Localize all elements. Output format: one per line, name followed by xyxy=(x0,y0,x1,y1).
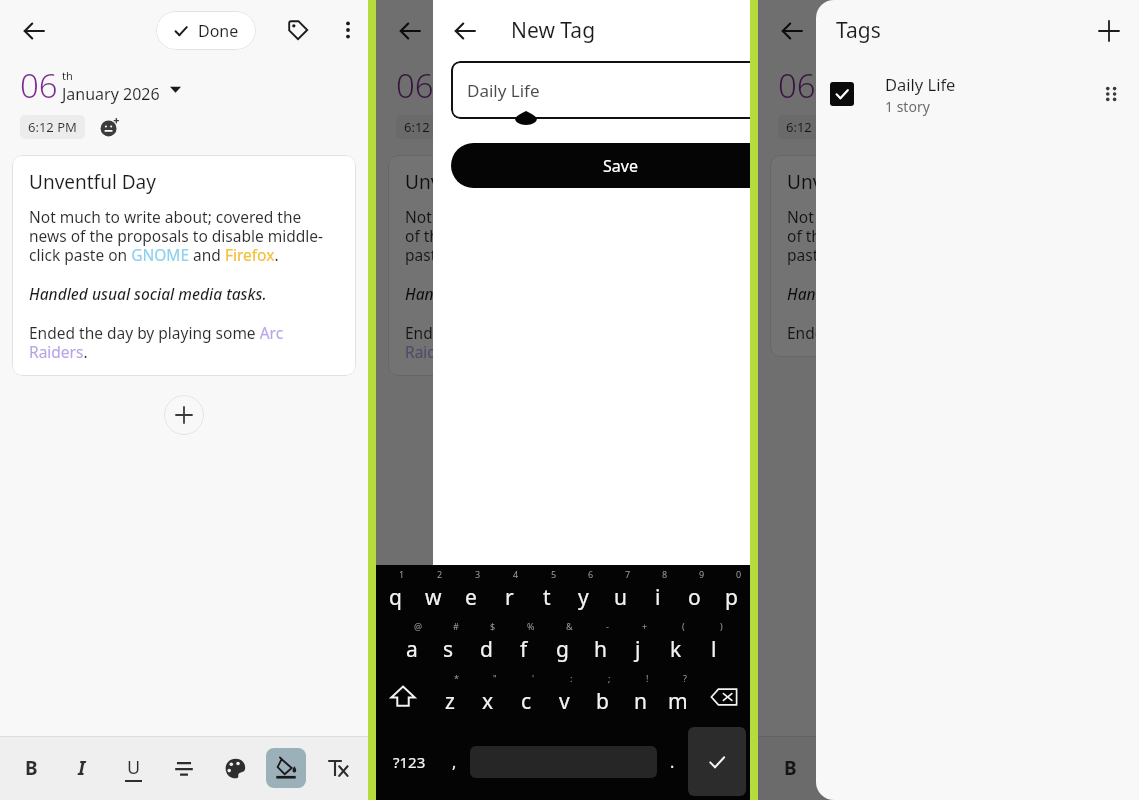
button[interactable]: Done xyxy=(532,11,632,50)
staticText: x xyxy=(482,687,494,716)
staticText: 3 xyxy=(475,568,481,580)
button[interactable]: Daily Life xyxy=(451,61,789,119)
button[interactable] xyxy=(260,736,311,800)
button[interactable]: 4 xyxy=(490,567,528,619)
button[interactable]: ! xyxy=(621,671,659,723)
button[interactable]: & xyxy=(543,619,581,671)
button[interactable]: 6:12 PM xyxy=(20,115,85,139)
button[interactable]: Back xyxy=(770,9,814,53)
button[interactable]: Reorder xyxy=(1091,74,1131,114)
button[interactable]: - xyxy=(581,619,619,671)
button[interactable]: * xyxy=(430,671,469,723)
button[interactable]: I xyxy=(56,736,107,800)
button[interactable] xyxy=(311,736,362,800)
button[interactable] xyxy=(640,736,692,800)
staticText: $ xyxy=(490,620,496,632)
button[interactable]: ( xyxy=(657,619,695,671)
button[interactable]: Unventful Day xyxy=(770,155,1127,357)
button[interactable]: ) xyxy=(695,619,733,671)
button[interactable]: Daily Life xyxy=(816,61,1139,127)
button[interactable]: 6:12 PM xyxy=(778,115,843,139)
button[interactable]: U xyxy=(484,736,536,800)
button[interactable]: Tags xyxy=(276,8,320,52)
button[interactable]: 06 xyxy=(396,63,557,108)
button[interactable]: B xyxy=(764,736,816,800)
staticText: 1 xyxy=(399,568,405,580)
button[interactable]: $ xyxy=(467,619,505,671)
button[interactable]: " xyxy=(469,671,507,723)
button[interactable]: I xyxy=(433,736,484,800)
button[interactable]: 2 xyxy=(414,567,452,619)
staticText: Unventful Day xyxy=(29,169,156,195)
button[interactable]: 0 xyxy=(713,567,750,619)
button[interactable] xyxy=(588,736,640,800)
button[interactable]: Back xyxy=(12,9,56,53)
button[interactable] xyxy=(158,736,209,800)
button[interactable]: ; xyxy=(583,671,621,723)
button[interactable]: ? xyxy=(659,671,697,723)
button[interactable]: More options xyxy=(1084,8,1128,52)
button[interactable]: 6:12 PM xyxy=(396,115,461,139)
button[interactable]: Done xyxy=(156,11,256,50)
button[interactable]: More options xyxy=(326,8,370,52)
button[interactable]: Back xyxy=(388,9,432,53)
button[interactable]: 9 xyxy=(676,567,713,619)
staticText: y xyxy=(578,583,589,612)
staticText: # xyxy=(453,620,459,632)
staticText: Ended the day by playing some Arc Raider… xyxy=(405,322,721,362)
button[interactable]: 06 xyxy=(778,63,939,108)
button[interactable]: B xyxy=(382,736,433,800)
button[interactable]: U xyxy=(107,736,158,800)
button[interactable]: 1 xyxy=(376,567,414,619)
button[interactable]: Enter xyxy=(688,727,746,796)
button[interactable]: ?123 xyxy=(380,727,439,796)
button[interactable]: 06 xyxy=(20,63,181,108)
button[interactable]: : xyxy=(545,671,583,723)
button[interactable] xyxy=(536,736,588,800)
button[interactable]: ' xyxy=(507,671,545,723)
button[interactable]: @ xyxy=(393,619,430,671)
button[interactable]: 7 xyxy=(602,567,639,619)
button[interactable]: Add mood xyxy=(97,115,121,139)
button[interactable] xyxy=(209,736,260,800)
button[interactable]: + xyxy=(619,619,657,671)
button[interactable]: 6 xyxy=(565,567,602,619)
staticText: ( xyxy=(682,620,685,632)
button[interactable]: , xyxy=(439,727,470,796)
button[interactable]: Unventful Day xyxy=(388,155,738,376)
button[interactable]: B xyxy=(6,736,56,800)
button[interactable]: Add tag xyxy=(1087,9,1131,53)
button[interactable]: % xyxy=(505,619,543,671)
button[interactable]: Save xyxy=(451,143,789,188)
staticText: U xyxy=(127,755,141,780)
staticText: Done xyxy=(198,20,239,42)
button[interactable]: Add mood xyxy=(473,115,497,139)
button[interactable]: I xyxy=(816,736,868,800)
button[interactable]: Unventful Day xyxy=(12,155,356,376)
button[interactable]: Back xyxy=(443,9,487,53)
button[interactable]: Add entry xyxy=(164,395,204,435)
button[interactable]: 5 xyxy=(528,567,565,619)
button[interactable]: 8 xyxy=(639,567,676,619)
button[interactable]: # xyxy=(430,619,467,671)
button[interactable]: . xyxy=(657,727,688,796)
button[interactable]: 3 xyxy=(452,567,490,619)
button[interactable]: Delete xyxy=(697,671,750,723)
button[interactable] xyxy=(692,736,744,800)
staticText: a xyxy=(406,635,418,664)
staticText: w xyxy=(425,583,442,612)
button[interactable]: Shift xyxy=(376,671,430,723)
